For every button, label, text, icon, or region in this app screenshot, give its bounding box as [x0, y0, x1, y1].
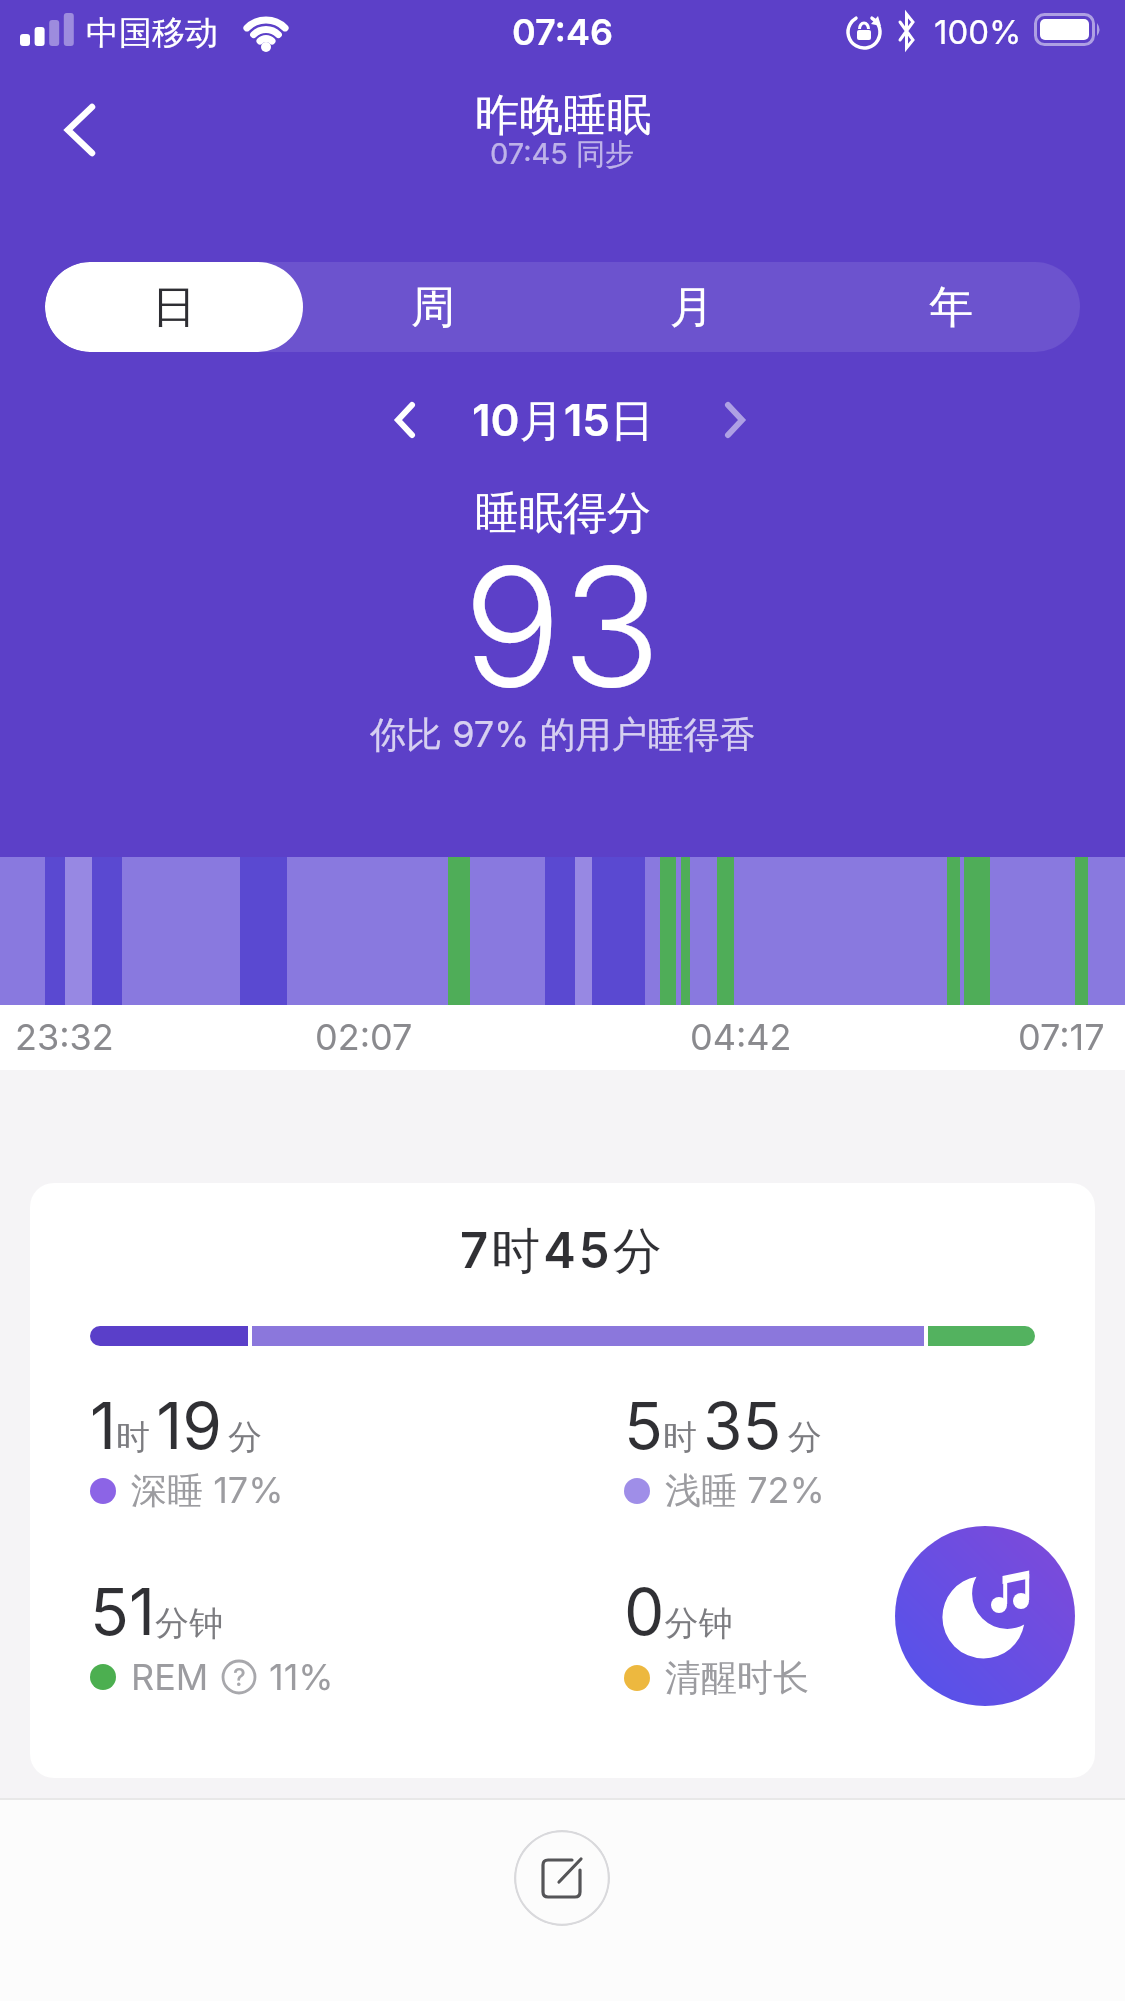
- staticText: 23:32: [15, 1015, 114, 1059]
- staticText: 02:07: [315, 1015, 413, 1059]
- button[interactable]: [40, 90, 120, 170]
- staticText: 07:46: [512, 10, 614, 54]
- staticText: 年: [929, 280, 973, 335]
- staticText: 0分钟: [624, 1573, 733, 1650]
- staticText: 11%: [269, 1655, 334, 1699]
- staticText: 月: [670, 280, 714, 335]
- staticText: ?: [233, 1663, 246, 1692]
- staticText: 100%: [934, 12, 1022, 52]
- staticText: 51分钟: [90, 1573, 223, 1650]
- staticText: 周: [411, 280, 455, 335]
- button[interactable]: 日: [45, 262, 303, 352]
- button[interactable]: [895, 1526, 1075, 1706]
- button[interactable]: 年: [821, 262, 1080, 352]
- staticText: 睡眠得分: [475, 486, 651, 541]
- staticText: 1时 19 分: [90, 1387, 263, 1464]
- staticText: 清醒时长: [665, 1655, 809, 1700]
- staticText: 深睡 17%: [131, 1468, 284, 1514]
- staticText: 你比 97% 的用户睡得香: [370, 712, 756, 758]
- staticText: 5时 35 分: [624, 1387, 822, 1464]
- button[interactable]: [514, 1830, 610, 1926]
- staticText: 中国移动: [86, 12, 218, 54]
- staticText: 04:42: [690, 1015, 792, 1059]
- button[interactable]: [375, 390, 435, 450]
- staticText: REM: [131, 1655, 209, 1699]
- staticText: 10月15日: [472, 393, 654, 449]
- staticText: 浅睡 72%: [665, 1468, 825, 1514]
- staticText: 93: [463, 527, 662, 707]
- staticText: 07:17: [1018, 1015, 1105, 1059]
- staticText: 日: [152, 280, 196, 335]
- staticText: 07:45 同步: [490, 136, 635, 173]
- button[interactable]: 月: [562, 262, 821, 352]
- button[interactable]: [705, 390, 765, 450]
- staticText: 昨晚睡眠: [475, 88, 651, 143]
- staticText: 7时45分: [460, 1221, 665, 1283]
- button[interactable]: 周: [303, 262, 562, 352]
